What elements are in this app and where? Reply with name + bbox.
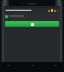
button[interactable]: Actions xyxy=(47,9,59,12)
button[interactable]: Primary action xyxy=(5,21,59,27)
button[interactable]: Back xyxy=(7,64,10,67)
button[interactable] xyxy=(4,13,60,19)
button[interactable] xyxy=(5,8,47,13)
button[interactable]: Recents xyxy=(54,64,57,67)
button[interactable]: Home xyxy=(31,64,34,67)
